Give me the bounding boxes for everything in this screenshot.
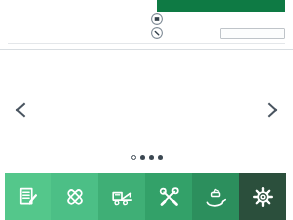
button[interactable]: Call	[151, 27, 163, 39]
button[interactable]	[220, 28, 285, 39]
button[interactable]: Next	[259, 97, 285, 123]
button[interactable]: Orders	[5, 173, 51, 220]
button[interactable]: Parts	[51, 173, 98, 220]
button[interactable]: Service	[192, 173, 239, 220]
button[interactable]: Settings	[239, 173, 286, 220]
button[interactable]: Device	[151, 13, 163, 25]
button[interactable]: Towing	[98, 173, 145, 220]
button[interactable]: Previous	[8, 97, 34, 123]
button[interactable]: Repairs	[145, 173, 192, 220]
